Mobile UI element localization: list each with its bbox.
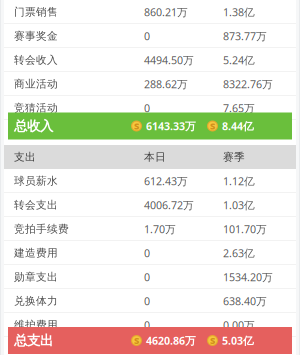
staticText: 建造费用 <box>14 246 58 259</box>
staticText: 1.03亿 <box>223 198 255 212</box>
staticText: S <box>134 334 139 347</box>
staticText: 8.44亿 <box>222 119 254 133</box>
staticText: 商业活动 <box>14 77 58 90</box>
staticText: 维护费用 <box>14 318 58 331</box>
staticText: 竞猜活动 <box>14 101 58 114</box>
staticText: 本日 <box>144 150 166 163</box>
staticText: 101.70万 <box>223 222 267 236</box>
staticText: 0 <box>144 318 150 332</box>
staticText: 4494.50万 <box>144 53 194 67</box>
staticText: 勋章支出 <box>14 270 58 283</box>
staticText: S <box>134 120 139 132</box>
staticText: 8322.76万 <box>223 77 273 91</box>
staticText: 竞拍手续费 <box>14 222 69 235</box>
staticText: 7.65万 <box>223 101 255 115</box>
staticText: 总收入 <box>14 118 53 134</box>
staticText: 860.21万 <box>144 5 188 19</box>
staticText: 支出 <box>14 150 36 163</box>
staticText: 1.12亿 <box>223 174 255 188</box>
staticText: 0 <box>144 294 150 308</box>
staticText: 873.77万 <box>223 29 267 43</box>
staticText: S <box>210 120 215 132</box>
staticText: 赛季 <box>223 150 245 163</box>
staticText: 0 <box>144 101 150 115</box>
staticText: 0.00万 <box>223 318 255 332</box>
staticText: 门票销售 <box>14 5 58 18</box>
staticText: 转会收入 <box>14 53 58 66</box>
staticText: 0 <box>144 29 150 43</box>
staticText: 总支出 <box>14 332 53 349</box>
staticText: 赛事奖金 <box>14 29 58 42</box>
staticText: 6143.33万 <box>146 119 196 133</box>
staticText: 1534.20万 <box>223 270 273 284</box>
staticText: 1.38亿 <box>223 5 255 19</box>
staticText: 转会支出 <box>14 198 58 211</box>
staticText: 球员薪水 <box>14 174 58 187</box>
staticText: 5.03亿 <box>222 333 254 348</box>
staticText: 4006.72万 <box>144 198 194 212</box>
staticText: 5.24亿 <box>223 53 255 67</box>
staticText: 0 <box>144 246 150 260</box>
staticText: 612.43万 <box>144 174 188 188</box>
button[interactable]: 总收入 <box>8 112 292 139</box>
button[interactable]: 总支出 <box>8 327 292 354</box>
staticText: 0 <box>144 270 150 284</box>
staticText: 4620.86万 <box>146 333 196 348</box>
staticText: 1.70万 <box>144 222 176 236</box>
staticText: 2.63亿 <box>223 246 255 260</box>
staticText: 288.62万 <box>144 77 188 91</box>
staticText: 兑换体力 <box>14 294 58 307</box>
staticText: 638.40万 <box>223 294 267 308</box>
staticText: S <box>210 334 215 347</box>
